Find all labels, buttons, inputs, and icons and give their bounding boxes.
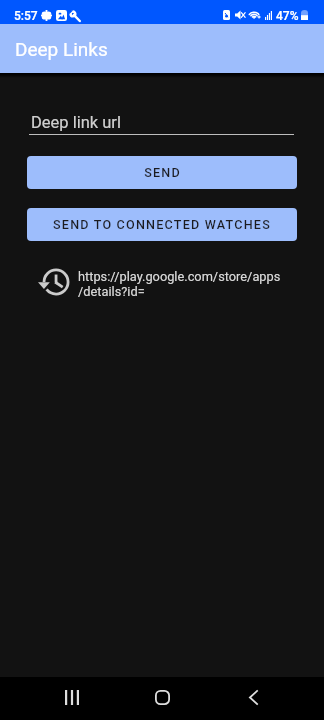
button[interactable]: Back bbox=[221, 677, 286, 720]
staticText: 47% bbox=[276, 9, 299, 23]
button[interactable]: https://play.google.com/store/apps /deta… bbox=[0, 269, 324, 299]
button[interactable]: SEND TO CONNECTED WATCHES bbox=[27, 208, 297, 241]
staticText: 5:57 bbox=[14, 9, 38, 23]
staticText: SEND TO CONNECTED WATCHES bbox=[53, 217, 271, 232]
staticText: SEND bbox=[144, 165, 181, 180]
staticText: https://play.google.com/store/apps /deta… bbox=[78, 269, 281, 299]
button[interactable]: Recent apps bbox=[39, 677, 104, 720]
button[interactable]: Home bbox=[130, 677, 195, 720]
button[interactable]: SEND bbox=[27, 156, 297, 189]
staticText: Deep link url bbox=[31, 113, 121, 132]
staticText: Deep Links bbox=[15, 38, 108, 60]
